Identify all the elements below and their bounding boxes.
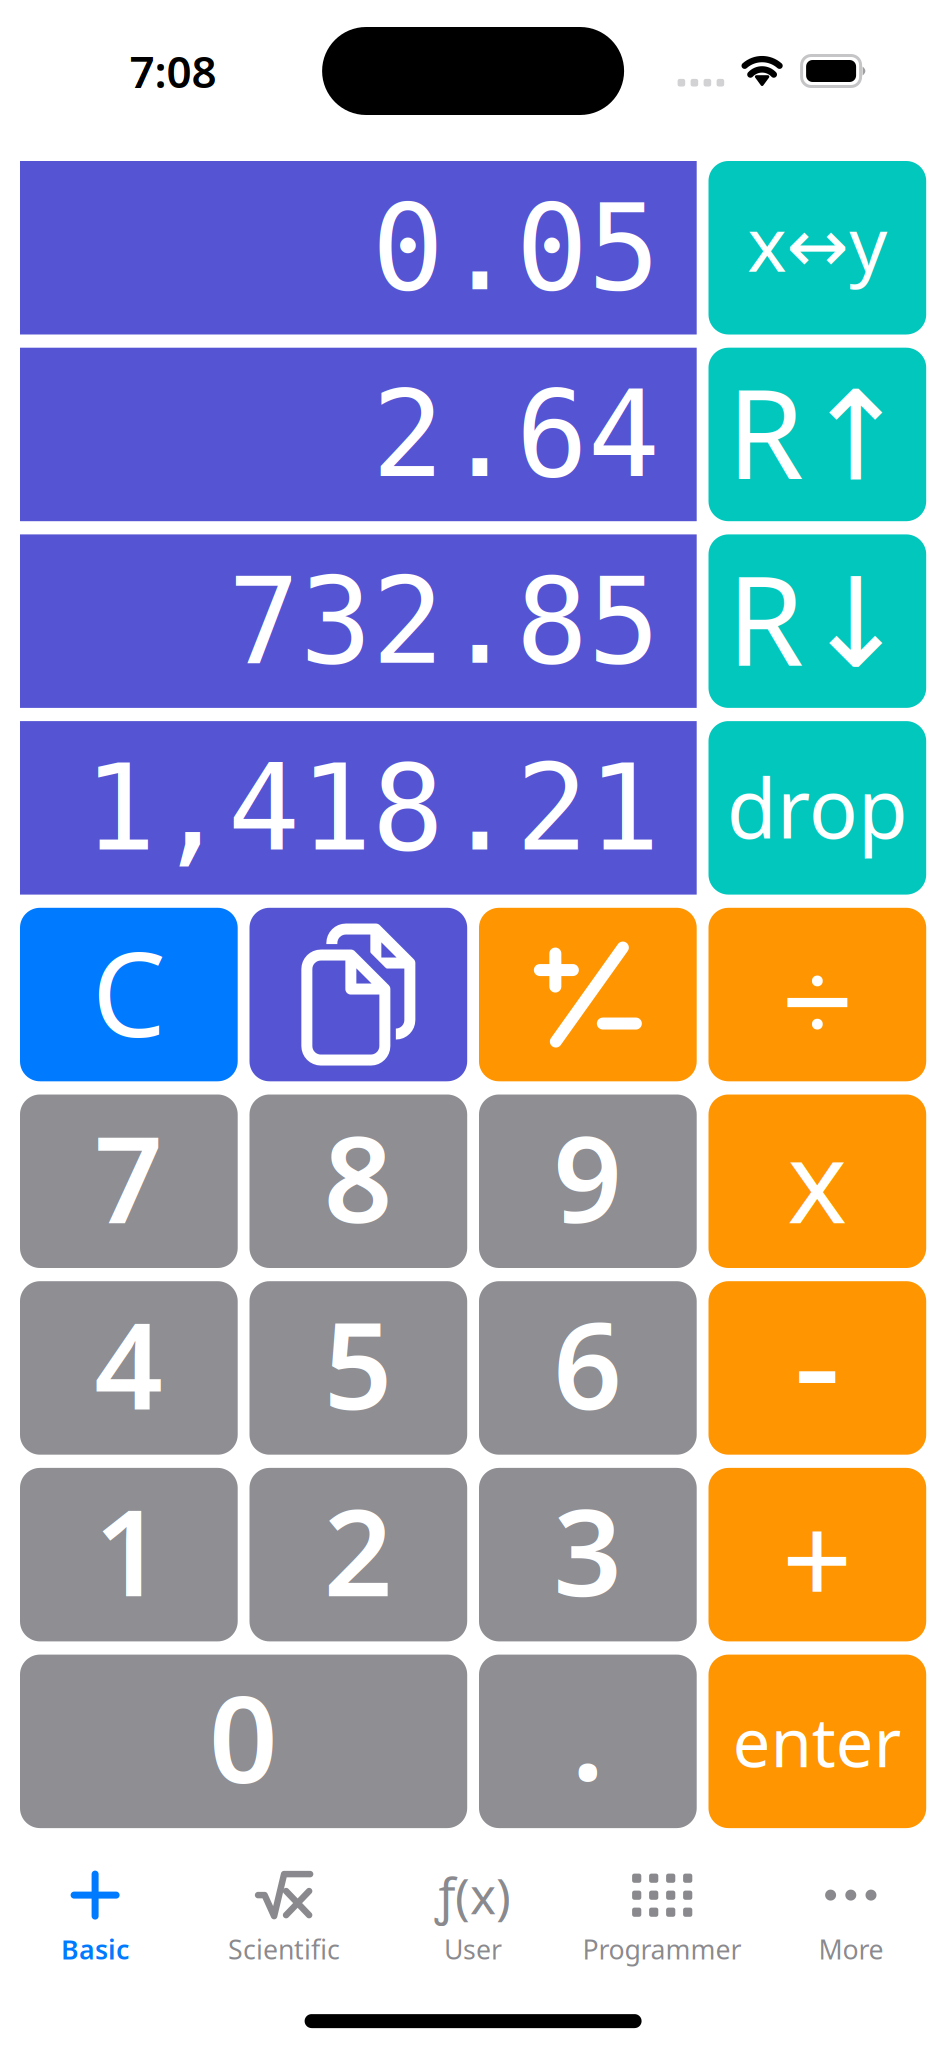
button[interactable]: C bbox=[20, 908, 238, 1081]
staticText: Basic bbox=[61, 1931, 129, 1967]
button[interactable]: 8 bbox=[249, 1094, 467, 1268]
button[interactable] bbox=[479, 908, 697, 1081]
staticText: 9 bbox=[553, 1097, 622, 1256]
button[interactable]: drop bbox=[708, 721, 926, 895]
button[interactable]: 2 bbox=[249, 1468, 467, 1641]
button[interactable]: Programmer bbox=[568, 1871, 757, 1966]
staticText: 5 bbox=[324, 1283, 393, 1443]
button[interactable]: Scientific bbox=[190, 1871, 379, 1966]
staticText: R↓ bbox=[727, 536, 908, 700]
button[interactable]: Basic bbox=[1, 1871, 190, 1966]
button[interactable]: . bbox=[479, 1655, 697, 1828]
staticText: enter bbox=[733, 1697, 902, 1786]
button[interactable]: x bbox=[708, 1094, 926, 1268]
staticText: 6 bbox=[553, 1283, 622, 1443]
staticText: - bbox=[793, 1260, 841, 1458]
staticText: 1 bbox=[94, 1470, 163, 1629]
button[interactable] bbox=[708, 908, 926, 1081]
staticText: drop bbox=[727, 753, 908, 861]
button[interactable]: 1 bbox=[20, 1468, 238, 1641]
staticText: 4 bbox=[94, 1283, 163, 1443]
button[interactable]: 5 bbox=[249, 1281, 467, 1455]
button[interactable]: 7 bbox=[20, 1094, 238, 1268]
button[interactable]: x↔y bbox=[708, 161, 926, 334]
button[interactable]: 732.85 bbox=[20, 534, 697, 708]
button[interactable]: + bbox=[708, 1468, 926, 1641]
button[interactable]: - bbox=[708, 1281, 926, 1455]
staticText: R↑ bbox=[727, 349, 908, 514]
button[interactable]: 2.64 bbox=[20, 348, 697, 521]
staticText: x bbox=[787, 1104, 847, 1254]
button[interactable]: 1,418.21 bbox=[20, 721, 697, 895]
staticText: Programmer bbox=[583, 1931, 742, 1967]
staticText: 8 bbox=[324, 1097, 393, 1256]
staticText: Scientific bbox=[228, 1931, 340, 1967]
staticText: 7 bbox=[94, 1097, 163, 1256]
staticText: C bbox=[92, 914, 166, 1069]
staticText: More bbox=[819, 1931, 884, 1967]
button[interactable]: R↑ bbox=[708, 348, 926, 521]
button[interactable]: 6 bbox=[479, 1281, 697, 1455]
staticText: 3 bbox=[553, 1470, 622, 1629]
staticText: 1,418.21 bbox=[84, 740, 660, 876]
staticText: 732.85 bbox=[228, 553, 660, 689]
button[interactable]: ƒ(x) bbox=[379, 1871, 568, 1966]
button[interactable]: enter bbox=[708, 1655, 926, 1828]
button[interactable]: 0 bbox=[20, 1655, 467, 1828]
staticText: ƒ(x) bbox=[435, 1862, 511, 1928]
staticText: 0 bbox=[209, 1657, 278, 1816]
button[interactable]: 3 bbox=[479, 1468, 697, 1641]
staticText: 0.05 bbox=[372, 180, 660, 316]
staticText: + bbox=[782, 1475, 853, 1640]
staticText: 2 bbox=[324, 1470, 393, 1629]
staticText: x↔y bbox=[747, 193, 887, 292]
button[interactable]: 9 bbox=[479, 1094, 697, 1268]
staticText: . bbox=[571, 1654, 604, 1813]
staticText: 7:08 bbox=[130, 42, 217, 100]
staticText: 2.64 bbox=[372, 366, 660, 503]
button[interactable]: 0.05 bbox=[20, 161, 697, 334]
button[interactable]: R↓ bbox=[708, 534, 926, 708]
button[interactable] bbox=[249, 908, 467, 1081]
staticText: User bbox=[444, 1931, 502, 1967]
button[interactable]: 4 bbox=[20, 1281, 238, 1455]
button[interactable]: More bbox=[757, 1871, 945, 1966]
